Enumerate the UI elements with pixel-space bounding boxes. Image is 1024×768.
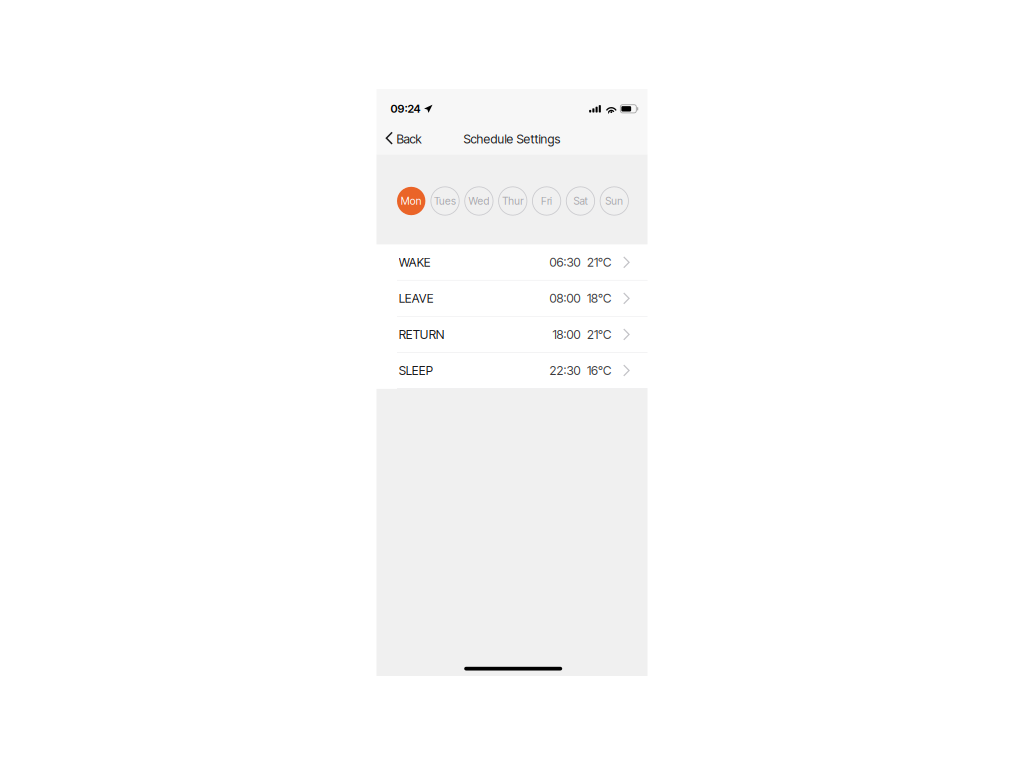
staticText: SLEEP [399,363,433,378]
staticText: Mon [401,195,422,207]
button[interactable]: Sat [566,187,595,215]
staticText: LEAVE [399,291,434,306]
staticText: 18°C [587,291,611,306]
staticText: 09:24 [390,102,420,116]
button[interactable]: Fri [532,187,561,215]
button[interactable]: Sun [600,187,628,215]
staticText: RETURN [399,327,445,342]
staticText: 06:30 [549,255,580,270]
button[interactable]: Thur [499,187,527,215]
button[interactable]: WAKE [376,245,647,281]
button[interactable]: SLEEP [376,353,647,389]
staticText: Thur [502,195,523,207]
staticText: Back [396,131,421,146]
staticText: 16°C [587,363,611,378]
staticText: 18:00 [552,327,580,342]
button[interactable]: RETURN [376,317,647,353]
staticText: 21°C [587,327,611,342]
staticText: Tues [434,195,456,207]
button[interactable]: Mon [397,187,425,215]
button[interactable]: LEAVE [376,281,647,317]
staticText: WAKE [399,255,431,270]
button[interactable]: Wed [465,187,493,215]
staticText: Sat [573,195,587,207]
staticText: Wed [468,195,489,207]
staticText: Fri [541,195,552,207]
button[interactable]: Back [376,121,430,154]
button[interactable]: Tues [431,187,459,215]
staticText: 21°C [587,255,611,270]
staticText: Schedule Settings [463,131,560,146]
staticText: 22:30 [549,363,580,378]
staticText: 08:00 [549,291,580,306]
staticText: Sun [605,195,623,207]
